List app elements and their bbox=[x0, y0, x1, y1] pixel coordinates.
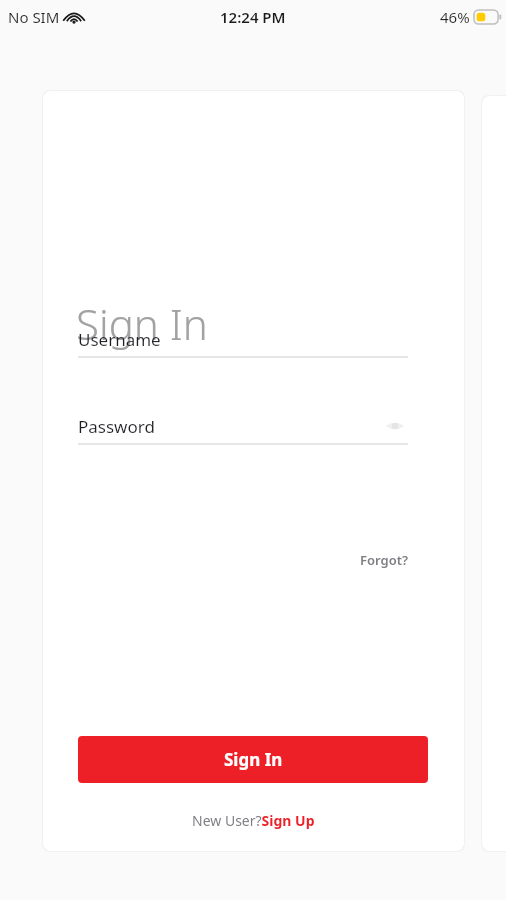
button[interactable]: Username bbox=[78, 322, 408, 356]
staticText: Password bbox=[78, 415, 155, 438]
button[interactable]: Show password bbox=[382, 413, 408, 439]
button[interactable]: New User?Sign Up bbox=[192, 811, 315, 830]
staticText: Username bbox=[78, 328, 161, 351]
staticText: 12:24 PM bbox=[220, 7, 286, 27]
staticText: New User?Sign Up bbox=[192, 811, 315, 830]
button[interactable]: Sign In bbox=[78, 736, 428, 783]
staticText: Sign In bbox=[76, 295, 208, 352]
button[interactable]: Password bbox=[78, 409, 408, 443]
staticText: Forgot? bbox=[360, 551, 408, 569]
staticText: 46% bbox=[440, 7, 470, 27]
staticText: No SIM bbox=[8, 7, 60, 27]
staticText: Sign In bbox=[224, 748, 283, 771]
button[interactable]: Forgot? bbox=[343, 547, 408, 573]
